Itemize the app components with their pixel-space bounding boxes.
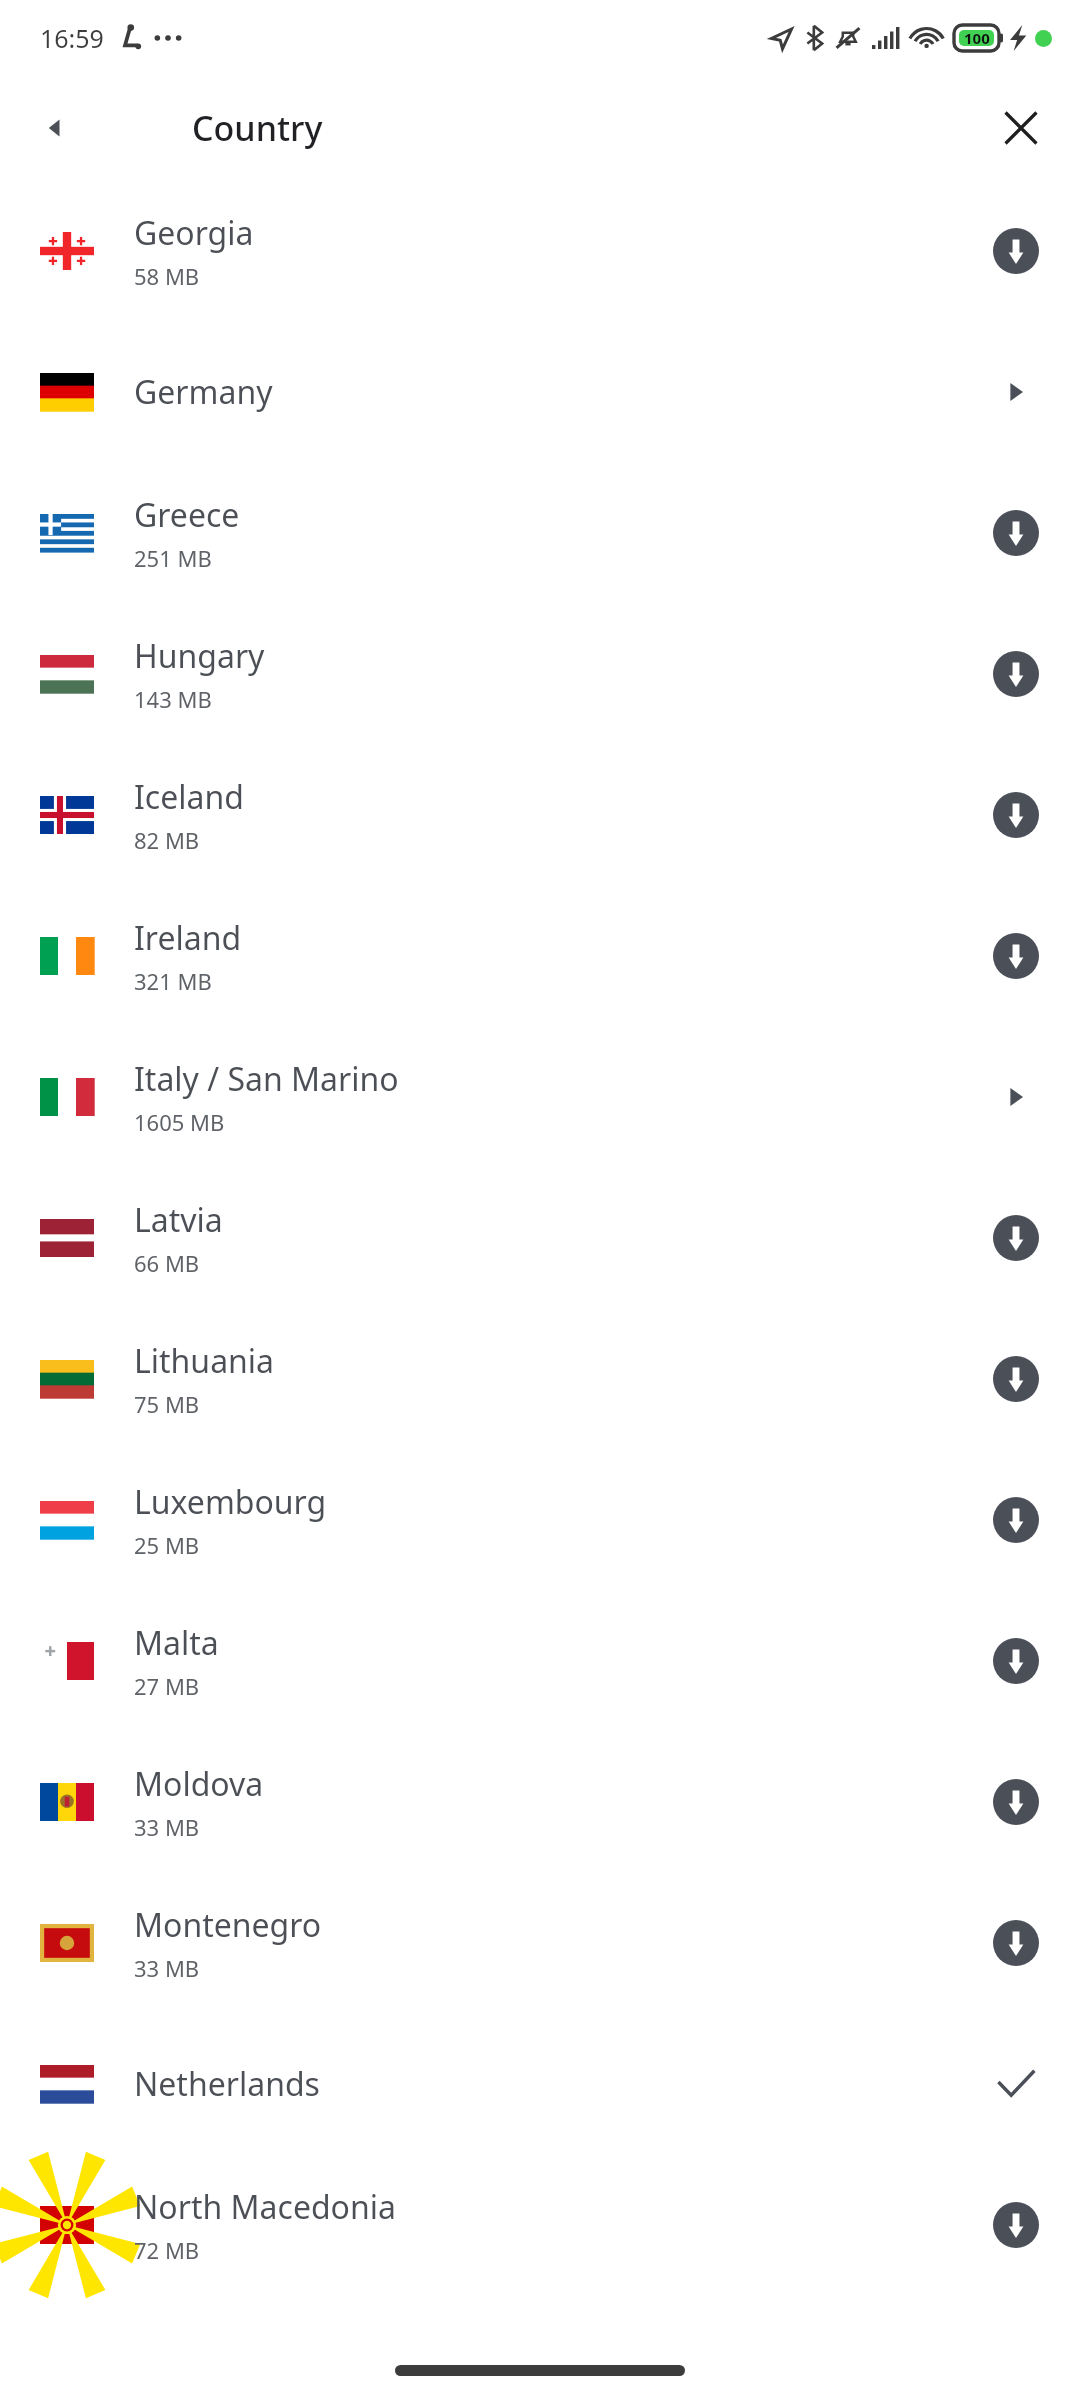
button[interactable]: Hungary [0, 603, 1080, 744]
staticText: 1605 MB [134, 1107, 225, 1137]
button[interactable]: Download [987, 927, 1045, 985]
staticText: Luxembourg [134, 1480, 327, 1524]
staticText: 27 MB [134, 1671, 200, 1701]
button[interactable]: Moldova [0, 1731, 1080, 1872]
staticText: 72 MB [134, 2235, 200, 2265]
staticText: Moldova [134, 1762, 264, 1806]
staticText: Latvia [134, 1198, 223, 1242]
staticText: Montenegro [134, 1903, 322, 1947]
staticText: Iceland [134, 775, 244, 819]
staticText: 58 MB [134, 261, 200, 291]
button[interactable]: Download [987, 1350, 1045, 1408]
staticText: Ireland [134, 916, 242, 960]
staticText: 251 MB [134, 543, 212, 573]
button[interactable]: Malta [0, 1590, 1080, 1731]
button[interactable]: Expand region [987, 363, 1045, 421]
button[interactable]: Latvia [0, 1167, 1080, 1308]
staticText: Netherlands [134, 2062, 320, 2106]
button[interactable]: Download [987, 2196, 1045, 2254]
button[interactable]: Luxembourg [0, 1449, 1080, 1590]
button[interactable]: Iceland [0, 744, 1080, 885]
staticText: 100 [964, 28, 990, 48]
button[interactable]: Downloaded [987, 2055, 1045, 2113]
button[interactable]: North Macedonia [0, 2154, 1080, 2295]
button[interactable]: Download [987, 504, 1045, 562]
staticText: 33 MB [134, 1812, 200, 1842]
staticText: 143 MB [134, 684, 212, 714]
staticText: 321 MB [134, 966, 212, 996]
staticText: 25 MB [134, 1530, 200, 1560]
button[interactable]: Georgia [0, 180, 1080, 321]
button[interactable]: Italy / San Marino [0, 1026, 1080, 1167]
staticText: Italy / San Marino [134, 1057, 399, 1101]
staticText: Lithuania [134, 1339, 275, 1383]
staticText: 82 MB [134, 825, 200, 855]
button[interactable]: Download [987, 1209, 1045, 1267]
button[interactable]: Ireland [0, 885, 1080, 1026]
button[interactable]: Download [987, 1632, 1045, 1690]
staticText: 66 MB [134, 1248, 200, 1278]
button[interactable]: Download [987, 1773, 1045, 1831]
staticText: Country [192, 105, 323, 151]
button[interactable]: Download [987, 1491, 1045, 1549]
staticText: Germany [134, 370, 273, 414]
button[interactable]: Download [987, 645, 1045, 703]
staticText: Malta [134, 1621, 219, 1665]
button[interactable]: Lithuania [0, 1308, 1080, 1449]
button[interactable]: Back [22, 95, 88, 161]
button[interactable]: Netherlands [0, 2013, 1080, 2154]
button[interactable]: Download [987, 786, 1045, 844]
staticText: 75 MB [134, 1389, 200, 1419]
button[interactable]: Download [987, 1914, 1045, 1972]
button[interactable]: Germany [0, 321, 1080, 462]
staticText: Greece [134, 493, 240, 537]
staticText: 16:59 [40, 21, 104, 55]
staticText: 33 MB [134, 1953, 200, 1983]
staticText: Georgia [134, 211, 254, 255]
button[interactable]: Expand region [987, 1068, 1045, 1126]
staticText: North Macedonia [134, 2185, 396, 2229]
button[interactable]: Download [987, 222, 1045, 280]
button[interactable]: Greece [0, 462, 1080, 603]
button[interactable]: Montenegro [0, 1872, 1080, 2013]
button[interactable]: Close [986, 93, 1056, 163]
staticText: Hungary [134, 634, 265, 678]
